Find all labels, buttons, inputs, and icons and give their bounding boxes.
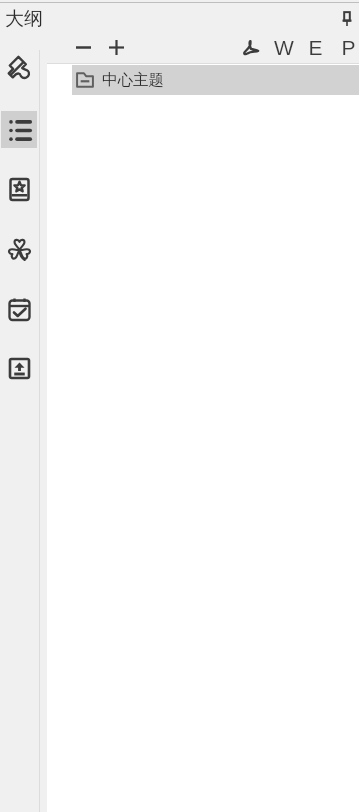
button[interactable]: Export <box>1 350 37 387</box>
staticText: 大纲 <box>5 7 43 31</box>
button[interactable]: P <box>335 34 359 61</box>
button[interactable]: Expand all <box>103 34 129 60</box>
button[interactable]: E <box>302 34 329 61</box>
button[interactable]: Theme <box>1 50 37 87</box>
button[interactable]: 大纲 <box>0 4 60 34</box>
button[interactable]: Tasks <box>1 291 37 328</box>
staticText: 中心主题 <box>102 70 164 90</box>
button[interactable]: 中心主题 <box>72 65 359 95</box>
button[interactable]: Outline <box>1 111 37 148</box>
button[interactable]: Export to PDF <box>237 34 264 61</box>
staticText: E <box>308 36 323 59</box>
button[interactable]: Library <box>1 171 37 208</box>
button[interactable]: Collapse all <box>70 34 96 60</box>
button[interactable]: Pin <box>335 3 359 27</box>
button[interactable]: W <box>270 34 297 61</box>
staticText: P <box>341 36 356 59</box>
staticText: W <box>274 36 294 59</box>
button[interactable]: Lucky <box>1 231 37 268</box>
